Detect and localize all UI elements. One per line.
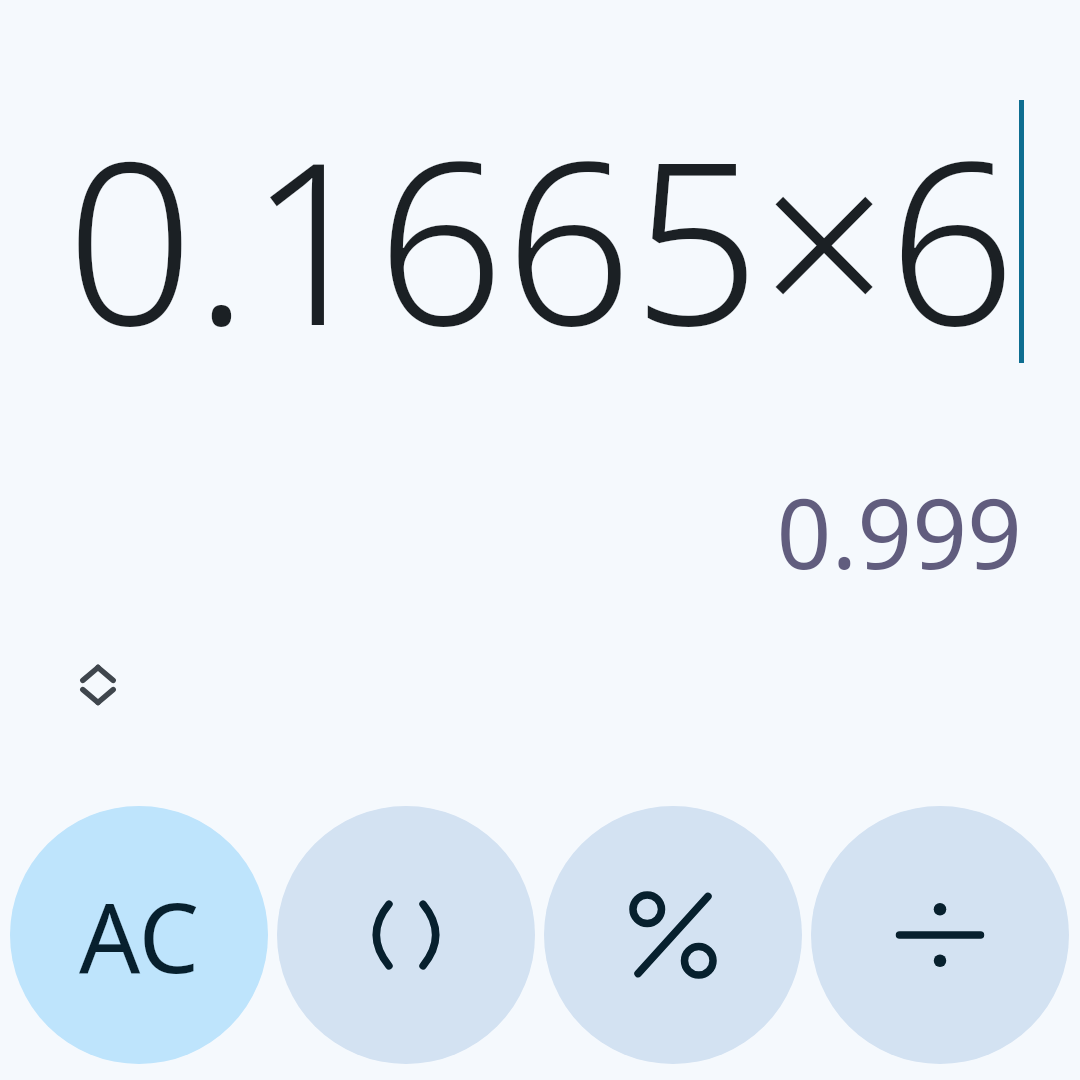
button[interactable]: Parentheses — [277, 806, 535, 1064]
button[interactable]: Divide — [811, 806, 1069, 1064]
button[interactable]: Expand history — [58, 645, 138, 725]
staticText: 0.1665×6 — [66, 86, 1016, 391]
staticText: AC — [79, 870, 200, 1001]
button[interactable]: Percent — [544, 806, 802, 1064]
staticText: 0.999 — [776, 466, 1022, 597]
button[interactable]: AC — [10, 806, 268, 1064]
